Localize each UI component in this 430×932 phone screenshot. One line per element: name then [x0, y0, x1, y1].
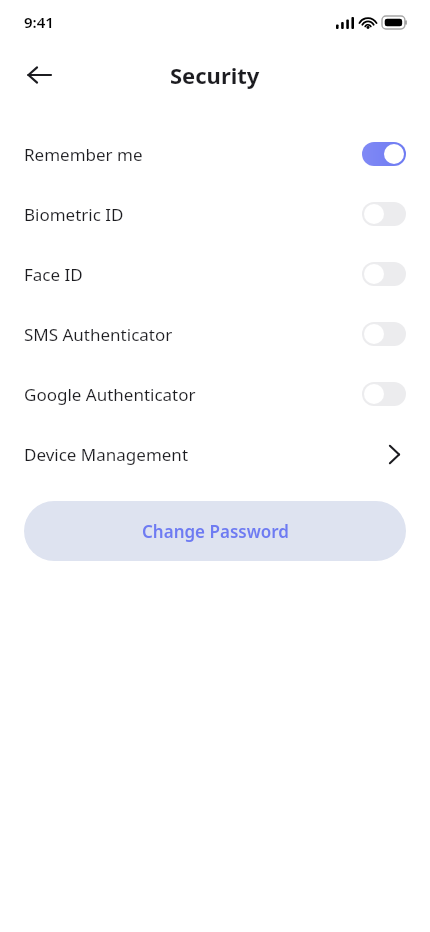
staticText: Device Management	[24, 443, 189, 466]
button[interactable]: Google Authenticator	[0, 364, 430, 424]
staticText: Google Authenticator	[24, 383, 196, 406]
staticText: Remember me	[24, 143, 143, 166]
button[interactable]: Off	[362, 382, 406, 406]
button[interactable]: Back	[18, 54, 60, 96]
button[interactable]: Off	[362, 262, 406, 286]
button[interactable]: Change Password	[24, 501, 406, 561]
staticText: 9:41	[24, 12, 54, 32]
staticText: Change Password	[142, 520, 289, 543]
button[interactable]: Off	[362, 322, 406, 346]
button[interactable]: Face ID	[0, 244, 430, 304]
button[interactable]: Biometric ID	[0, 184, 430, 244]
button[interactable]: Off	[362, 202, 406, 226]
staticText: SMS Authenticator	[24, 323, 173, 346]
button[interactable]: Remember me	[0, 124, 430, 184]
button[interactable]: SMS Authenticator	[0, 304, 430, 364]
staticText: Face ID	[24, 263, 83, 286]
staticText: Security	[170, 60, 260, 90]
button[interactable]: Device Management	[0, 424, 430, 484]
staticText: Biometric ID	[24, 203, 124, 226]
button[interactable]: On	[362, 142, 406, 166]
